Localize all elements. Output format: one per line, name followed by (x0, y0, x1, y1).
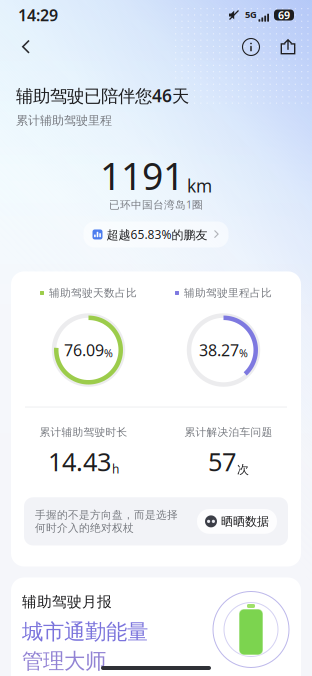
staticText: 1191 (100, 151, 184, 200)
button[interactable]: Information (236, 32, 266, 62)
staticText: 14:29 (18, 4, 58, 26)
button[interactable]: Back (9, 30, 43, 64)
staticText: h (112, 461, 119, 477)
staticText: 晒晒数据 (221, 514, 269, 529)
staticText: km (187, 174, 212, 197)
staticText: 38.27 (199, 339, 239, 361)
staticText: 累计辅助驾驶时长 (39, 425, 127, 439)
button[interactable]: Share (273, 32, 303, 62)
staticText: 57 (208, 445, 236, 478)
staticText: 76.09 (64, 339, 104, 361)
staticText: 69 (278, 8, 290, 22)
staticText: 次 (237, 462, 249, 477)
button[interactable]: 超越65.83%的鹏友 (83, 221, 228, 247)
staticText: 城市通勤能量 (22, 619, 148, 645)
staticText: 14.43 (48, 445, 111, 478)
button[interactable]: 晒晒数据 (197, 509, 277, 534)
staticText: 已环中国台湾岛1圈 (109, 197, 203, 211)
staticText: % (104, 346, 113, 360)
staticText: 手握的不是方向盘，而是选择 何时介入的绝对权杖 (35, 508, 178, 534)
staticText: 5G (245, 8, 257, 21)
staticText: 辅助驾驶里程占比 (184, 286, 272, 299)
staticText: 超越65.83%的鹏友 (106, 226, 207, 242)
staticText: 辅助驾驶已陪伴您46天 (16, 84, 189, 107)
staticText: % (239, 346, 248, 360)
staticText: 辅助驾驶月报 (22, 593, 112, 611)
staticText: 累计解决泊车问题 (184, 425, 272, 439)
staticText: 管理大师 (22, 648, 106, 674)
staticText: 辅助驾驶天数占比 (49, 286, 137, 299)
staticText: 累计辅助驾驶里程 (16, 113, 112, 128)
